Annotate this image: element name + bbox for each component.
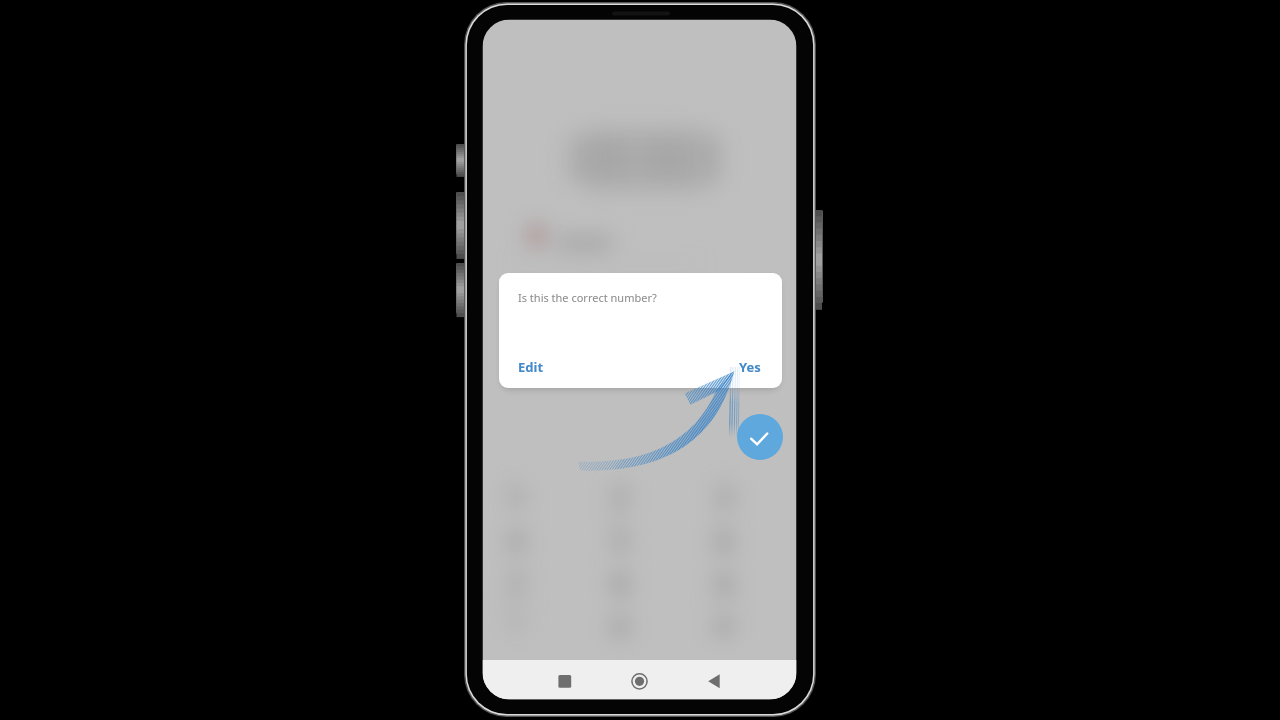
- button[interactable]: Yes: [731, 352, 769, 382]
- staticText: Yes: [739, 358, 761, 376]
- staticText: Is this the correct number?: [518, 290, 657, 305]
- button[interactable]: Edit: [510, 352, 552, 382]
- staticText: Edit: [518, 358, 544, 376]
- button[interactable]: Confirm number: [737, 414, 783, 460]
